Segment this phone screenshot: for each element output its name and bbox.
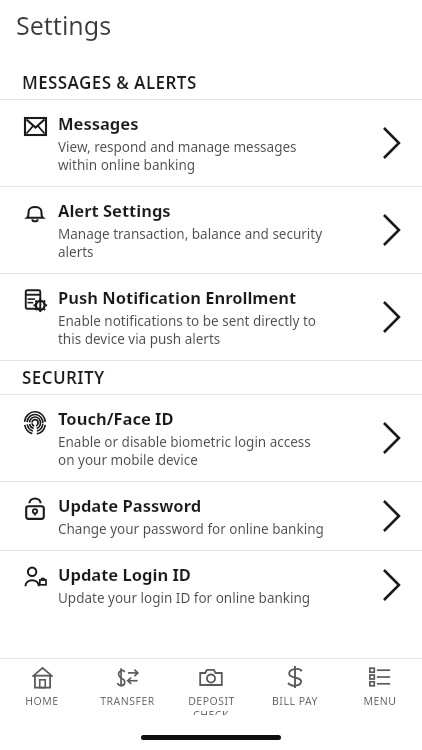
button[interactable]: Deposit Check [169, 659, 253, 715]
staticText: TRANSFER [100, 694, 155, 708]
staticText: CHECK [193, 708, 229, 715]
button[interactable]: Menu [338, 659, 422, 708]
button[interactable]: Update Password [0, 482, 422, 550]
button[interactable]: Alert Settings [0, 187, 422, 273]
staticText: Enable notifications to be sent directly… [58, 312, 316, 330]
staticText: on your mobile device [58, 451, 198, 469]
staticText: Update Login ID [58, 563, 191, 585]
staticText: SECURITY [22, 366, 105, 389]
button[interactable]: Transfer [85, 659, 169, 708]
other: Deposit Check [199, 667, 223, 687]
button[interactable]: Touch/Face ID [0, 395, 422, 481]
staticText: Settings [16, 8, 112, 42]
staticText: Manage transaction, balance and security [58, 225, 323, 243]
staticText: Change your password for online banking [58, 520, 324, 538]
other: Transfer [116, 666, 139, 689]
staticText: BILL PAY [272, 694, 318, 708]
staticText: Update Password [58, 494, 202, 516]
staticText: MESSAGES & ALERTS [22, 71, 197, 94]
button[interactable]: Update Login ID [0, 551, 422, 619]
staticText: Update your login ID for online banking [58, 589, 311, 607]
staticText: MENU [363, 694, 397, 708]
staticText: Enable or disable biometric login access [58, 433, 311, 451]
staticText: Alert Settings [58, 199, 171, 221]
other: Home [31, 666, 54, 689]
staticText: Touch/Face ID [58, 407, 174, 429]
staticText: DEPOSIT [188, 694, 235, 708]
button[interactable]: Bill Pay [253, 659, 337, 708]
button[interactable]: Push Notification Enrollment [0, 274, 422, 360]
staticText: View, respond and manage messages [58, 138, 297, 156]
staticText: HOME [25, 694, 59, 708]
other: Bill Pay [286, 665, 304, 689]
staticText: alerts [58, 243, 94, 261]
staticText: Push Notification Enrollment [58, 286, 297, 308]
button[interactable]: Messages [0, 100, 422, 186]
other: Menu [369, 667, 391, 687]
staticText: this device via push alerts [58, 330, 221, 348]
staticText: Messages [58, 112, 139, 134]
staticText: within online banking [58, 156, 196, 174]
button[interactable]: Home [0, 659, 84, 708]
